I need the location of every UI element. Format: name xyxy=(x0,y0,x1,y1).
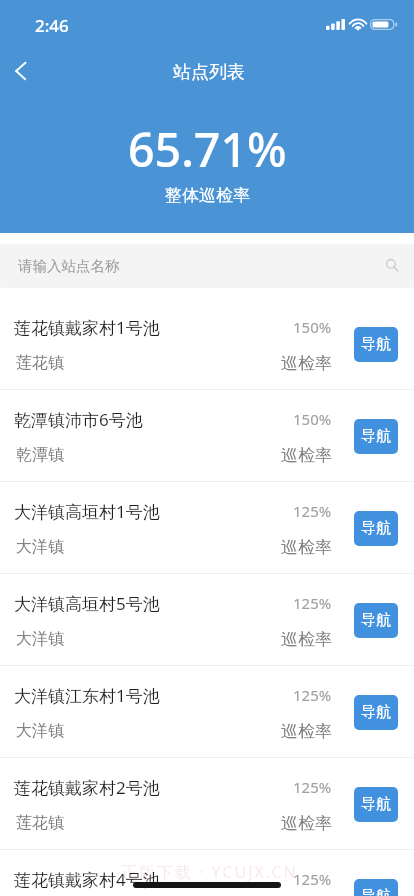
staticText: 莲花镇戴家村2号池 xyxy=(14,776,160,799)
staticText: 莲花镇 xyxy=(16,813,64,833)
staticText: 大洋镇高垣村1号池 xyxy=(14,500,160,523)
staticText: 巡检率 xyxy=(281,721,332,742)
staticText: 大洋镇江东村1号池 xyxy=(14,684,160,707)
button[interactable]: 导航 xyxy=(354,695,398,730)
staticText: 125% xyxy=(293,777,332,797)
staticText: 站点列表 xyxy=(173,61,245,84)
staticText: 巡检率 xyxy=(281,629,332,650)
staticText: 请输入站点名称 xyxy=(18,257,120,275)
button[interactable]: Back xyxy=(2,51,42,91)
staticText: 2:46 xyxy=(35,14,69,37)
button[interactable]: 乾潭镇沛市6号池 xyxy=(0,390,414,481)
staticText: 巡检率 xyxy=(281,353,332,374)
button[interactable]: 大洋镇江东村1号池 xyxy=(0,666,414,757)
staticText: 巡检率 xyxy=(281,445,332,466)
staticText: 导航 xyxy=(361,427,391,446)
staticText: 巡检率 xyxy=(281,537,332,558)
staticText: 大洋镇高垣村5号池 xyxy=(14,592,160,615)
staticText: 大洋镇 xyxy=(16,721,64,741)
staticText: 150% xyxy=(293,317,332,337)
staticText: 正版下载 · YCUJX.CN xyxy=(121,861,298,883)
staticText: 导航 xyxy=(361,795,391,814)
button[interactable]: 导航 xyxy=(354,419,398,454)
staticText: 65.71% xyxy=(128,117,287,180)
button[interactable]: 导航 xyxy=(354,511,398,546)
staticText: 125% xyxy=(293,593,332,613)
staticText: 导航 xyxy=(361,335,391,354)
staticText: 大洋镇 xyxy=(16,537,64,557)
staticText: 125% xyxy=(293,685,332,705)
staticText: 导航 xyxy=(361,611,391,630)
button[interactable]: 莲花镇戴家村1号池 xyxy=(0,298,414,389)
button[interactable]: 请输入站点名称 xyxy=(0,244,414,288)
staticText: 大洋镇 xyxy=(16,629,64,649)
button[interactable]: 导航 xyxy=(354,879,398,896)
staticText: 莲花镇戴家村1号池 xyxy=(14,316,160,339)
staticText: 莲花镇 xyxy=(16,353,64,373)
staticText: 导航 xyxy=(361,887,391,896)
staticText: 巡检率 xyxy=(281,813,332,834)
button[interactable]: 大洋镇高垣村1号池 xyxy=(0,482,414,573)
button[interactable]: 莲花镇戴家村4号池 xyxy=(0,850,414,896)
button[interactable]: 莲花镇戴家村2号池 xyxy=(0,758,414,849)
staticText: 莲花镇戴家村4号池 xyxy=(14,868,160,891)
staticText: 150% xyxy=(293,409,332,429)
staticText: 乾潭镇 xyxy=(16,445,64,465)
staticText: 整体巡检率 xyxy=(165,185,250,206)
staticText: 125% xyxy=(293,501,332,521)
button[interactable]: 导航 xyxy=(354,327,398,362)
staticText: 导航 xyxy=(361,703,391,722)
staticText: 125% xyxy=(293,869,332,889)
staticText: 乾潭镇沛市6号池 xyxy=(14,408,143,431)
button[interactable]: 导航 xyxy=(354,787,398,822)
staticText: 导航 xyxy=(361,519,391,538)
button[interactable]: 导航 xyxy=(354,603,398,638)
button[interactable]: 大洋镇高垣村5号池 xyxy=(0,574,414,665)
